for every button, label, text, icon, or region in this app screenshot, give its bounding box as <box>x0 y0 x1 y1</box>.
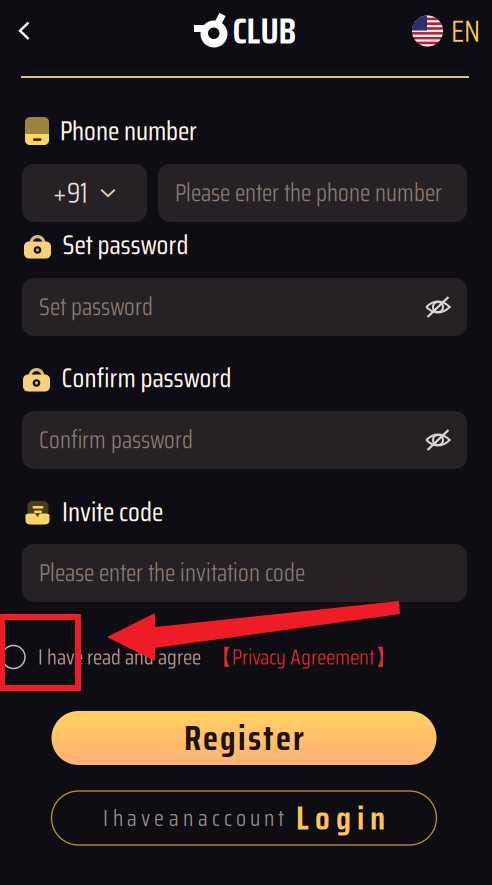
button[interactable]: I <box>51 791 436 845</box>
button[interactable]: Please enter the phone number <box>158 164 467 222</box>
button[interactable]: Country code +91 <box>22 164 147 222</box>
button[interactable]: R e g i s t e r <box>51 711 436 765</box>
staticText: a c c o u n t <box>198 800 284 836</box>
staticText: L o g i n <box>296 792 385 844</box>
staticText: Please enter the phone number <box>175 174 442 212</box>
staticText: Confirm password <box>61 357 231 399</box>
button[interactable]: Please enter the invitation code <box>22 544 467 602</box>
staticText: R e g i s t e r <box>184 711 304 765</box>
staticText: I <box>103 800 108 836</box>
staticText: Set password <box>39 288 153 326</box>
staticText: Confirm password <box>39 421 193 459</box>
button[interactable]: Back <box>2 9 46 53</box>
staticText: Set password <box>62 224 188 266</box>
staticText: h a v e <box>113 800 164 836</box>
staticText: +91 <box>53 171 88 215</box>
staticText: I have read and agree <box>38 640 201 674</box>
staticText: CLUB <box>232 3 296 59</box>
staticText: Invite code <box>62 491 163 533</box>
staticText: 【Privacy Agreement】 <box>211 640 396 674</box>
staticText: Please enter the invitation code <box>39 554 305 592</box>
button[interactable]: Confirm password <box>22 411 467 469</box>
button[interactable]: I have read and agree <box>2 639 396 675</box>
staticText: Phone number <box>60 110 197 152</box>
button[interactable]: Set password <box>22 278 467 336</box>
button[interactable]: Language: English <box>412 9 480 53</box>
staticText: EN <box>451 7 480 55</box>
staticText: a n <box>169 800 193 836</box>
